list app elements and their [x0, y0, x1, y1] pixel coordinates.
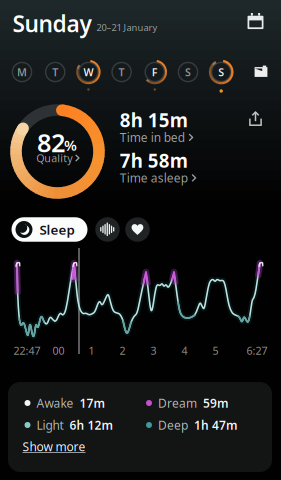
button[interactable]: Show more — [22, 438, 85, 454]
staticText: Light — [36, 417, 63, 433]
staticText: Sunday — [12, 8, 91, 38]
button[interactable]: 8h 15m — [120, 108, 232, 145]
staticText: 2 — [119, 343, 125, 358]
staticText: 5 — [212, 343, 218, 358]
button[interactable]: Sleep notes — [250, 60, 272, 82]
staticText: Awake — [36, 395, 73, 411]
staticText: W — [83, 65, 93, 79]
staticText: T — [52, 65, 58, 79]
staticText: 82 — [37, 126, 65, 159]
button[interactable]: Day M — [9, 59, 35, 85]
staticText: 7h 58m — [120, 148, 188, 173]
staticText: S — [185, 65, 191, 79]
staticText: Sleep — [39, 221, 74, 238]
staticText: Dream — [158, 395, 197, 411]
staticText: 1h 47m — [194, 417, 238, 433]
staticText: Time in bed — [120, 129, 185, 145]
staticText: 8h 15m — [120, 108, 188, 132]
staticText: F — [152, 65, 158, 79]
staticText: M — [17, 65, 27, 79]
button[interactable]: Calendar — [243, 9, 267, 33]
staticText: 22:47 — [13, 343, 40, 358]
staticText: Show more — [22, 438, 85, 454]
staticText: 00 — [52, 343, 64, 358]
button[interactable]: Share — [244, 107, 266, 129]
button[interactable]: Day T — [109, 59, 135, 85]
staticText: 59m — [203, 395, 229, 411]
button[interactable]: Day S — [175, 59, 201, 85]
staticText: T — [119, 65, 125, 79]
staticText: 3 — [150, 343, 156, 358]
button[interactable]: 7h 58m — [120, 148, 232, 186]
staticText: Time asleep — [120, 170, 188, 186]
staticText: 1 — [88, 343, 94, 358]
button[interactable]: Snore sounds — [95, 217, 120, 242]
button[interactable]: Day S — [208, 59, 234, 85]
staticText: 4 — [181, 343, 187, 358]
button[interactable]: Day W — [75, 59, 101, 85]
button[interactable]: Sleep — [11, 217, 87, 242]
staticText: Deep — [158, 417, 188, 433]
button[interactable]: Heart rate — [125, 217, 150, 242]
staticText: Quality — [36, 151, 72, 165]
staticText: % — [64, 135, 77, 155]
staticText: 6:27 — [246, 343, 267, 358]
staticText: 20–21 January — [96, 21, 157, 34]
staticText: 17m — [79, 395, 105, 411]
button[interactable]: Day T — [42, 59, 68, 85]
staticText: S — [218, 65, 224, 79]
staticText: 6h 12m — [69, 417, 113, 433]
button[interactable]: Sleep quality 82% — [0, 91, 117, 211]
button[interactable]: Day F — [142, 59, 168, 85]
